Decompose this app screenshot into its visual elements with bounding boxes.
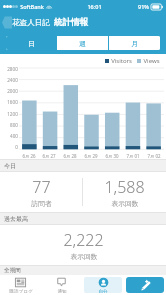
staticText: 表示回数 <box>70 252 98 261</box>
staticText: 400 <box>10 133 18 139</box>
staticText: 月 <box>131 39 138 48</box>
staticText: 91% <box>138 3 149 10</box>
staticText: Visitors <box>111 57 132 65</box>
staticText: 自分 <box>98 289 108 293</box>
staticText: SoftBank <box>20 3 44 10</box>
staticText: 7月 01 <box>126 153 140 159</box>
staticText: Views <box>143 57 160 65</box>
staticText: 日 <box>28 39 35 48</box>
staticText: 800 <box>10 122 18 128</box>
staticText: 表示回数 <box>111 199 139 208</box>
staticText: 6月 30 <box>105 153 119 159</box>
button[interactable]: 新規投稿を作成 <box>126 277 164 293</box>
staticText: 統計情報 <box>54 17 88 28</box>
staticText: 77 <box>32 176 51 198</box>
staticText: 6月 26 <box>22 153 36 159</box>
staticText: 2000 <box>7 88 18 94</box>
button[interactable]: 通知 <box>43 277 80 293</box>
staticText: 16:01 <box>87 3 102 10</box>
staticText: 通知 <box>57 289 67 293</box>
staticText: 1200 <box>7 111 18 117</box>
staticText: 7月 02 <box>147 153 161 159</box>
staticText: 0 <box>15 144 18 150</box>
button[interactable]: 1,588 <box>83 172 166 212</box>
staticText: 購読ブログ <box>9 289 33 293</box>
button[interactable]: 77 <box>0 172 82 212</box>
staticText: 今日 <box>4 162 16 170</box>
button[interactable]: 自分 <box>84 277 122 293</box>
staticText: 6月 27 <box>42 153 56 159</box>
button[interactable]: 週 <box>57 36 108 50</box>
button[interactable]: 日 <box>6 36 56 50</box>
staticText: 全期間 <box>4 267 21 274</box>
staticText: 訪問者 <box>31 199 52 208</box>
button[interactable]: 購読ブログ <box>2 277 39 293</box>
staticText: 過去最高 <box>4 215 28 223</box>
staticText: 1,588 <box>104 176 145 198</box>
staticText: 花盗人日記 <box>12 18 50 27</box>
staticText: 2400 <box>7 77 18 83</box>
button[interactable]: 月 <box>109 36 160 50</box>
staticText: 週 <box>79 39 86 48</box>
button[interactable]: 花盗人日記 <box>0 13 54 32</box>
staticText: 6月 28 <box>63 153 77 159</box>
staticText: 2800 <box>7 66 18 72</box>
staticText: 6月 29 <box>84 153 98 159</box>
staticText: 1600 <box>7 99 18 105</box>
staticText: 2,222 <box>63 229 104 251</box>
